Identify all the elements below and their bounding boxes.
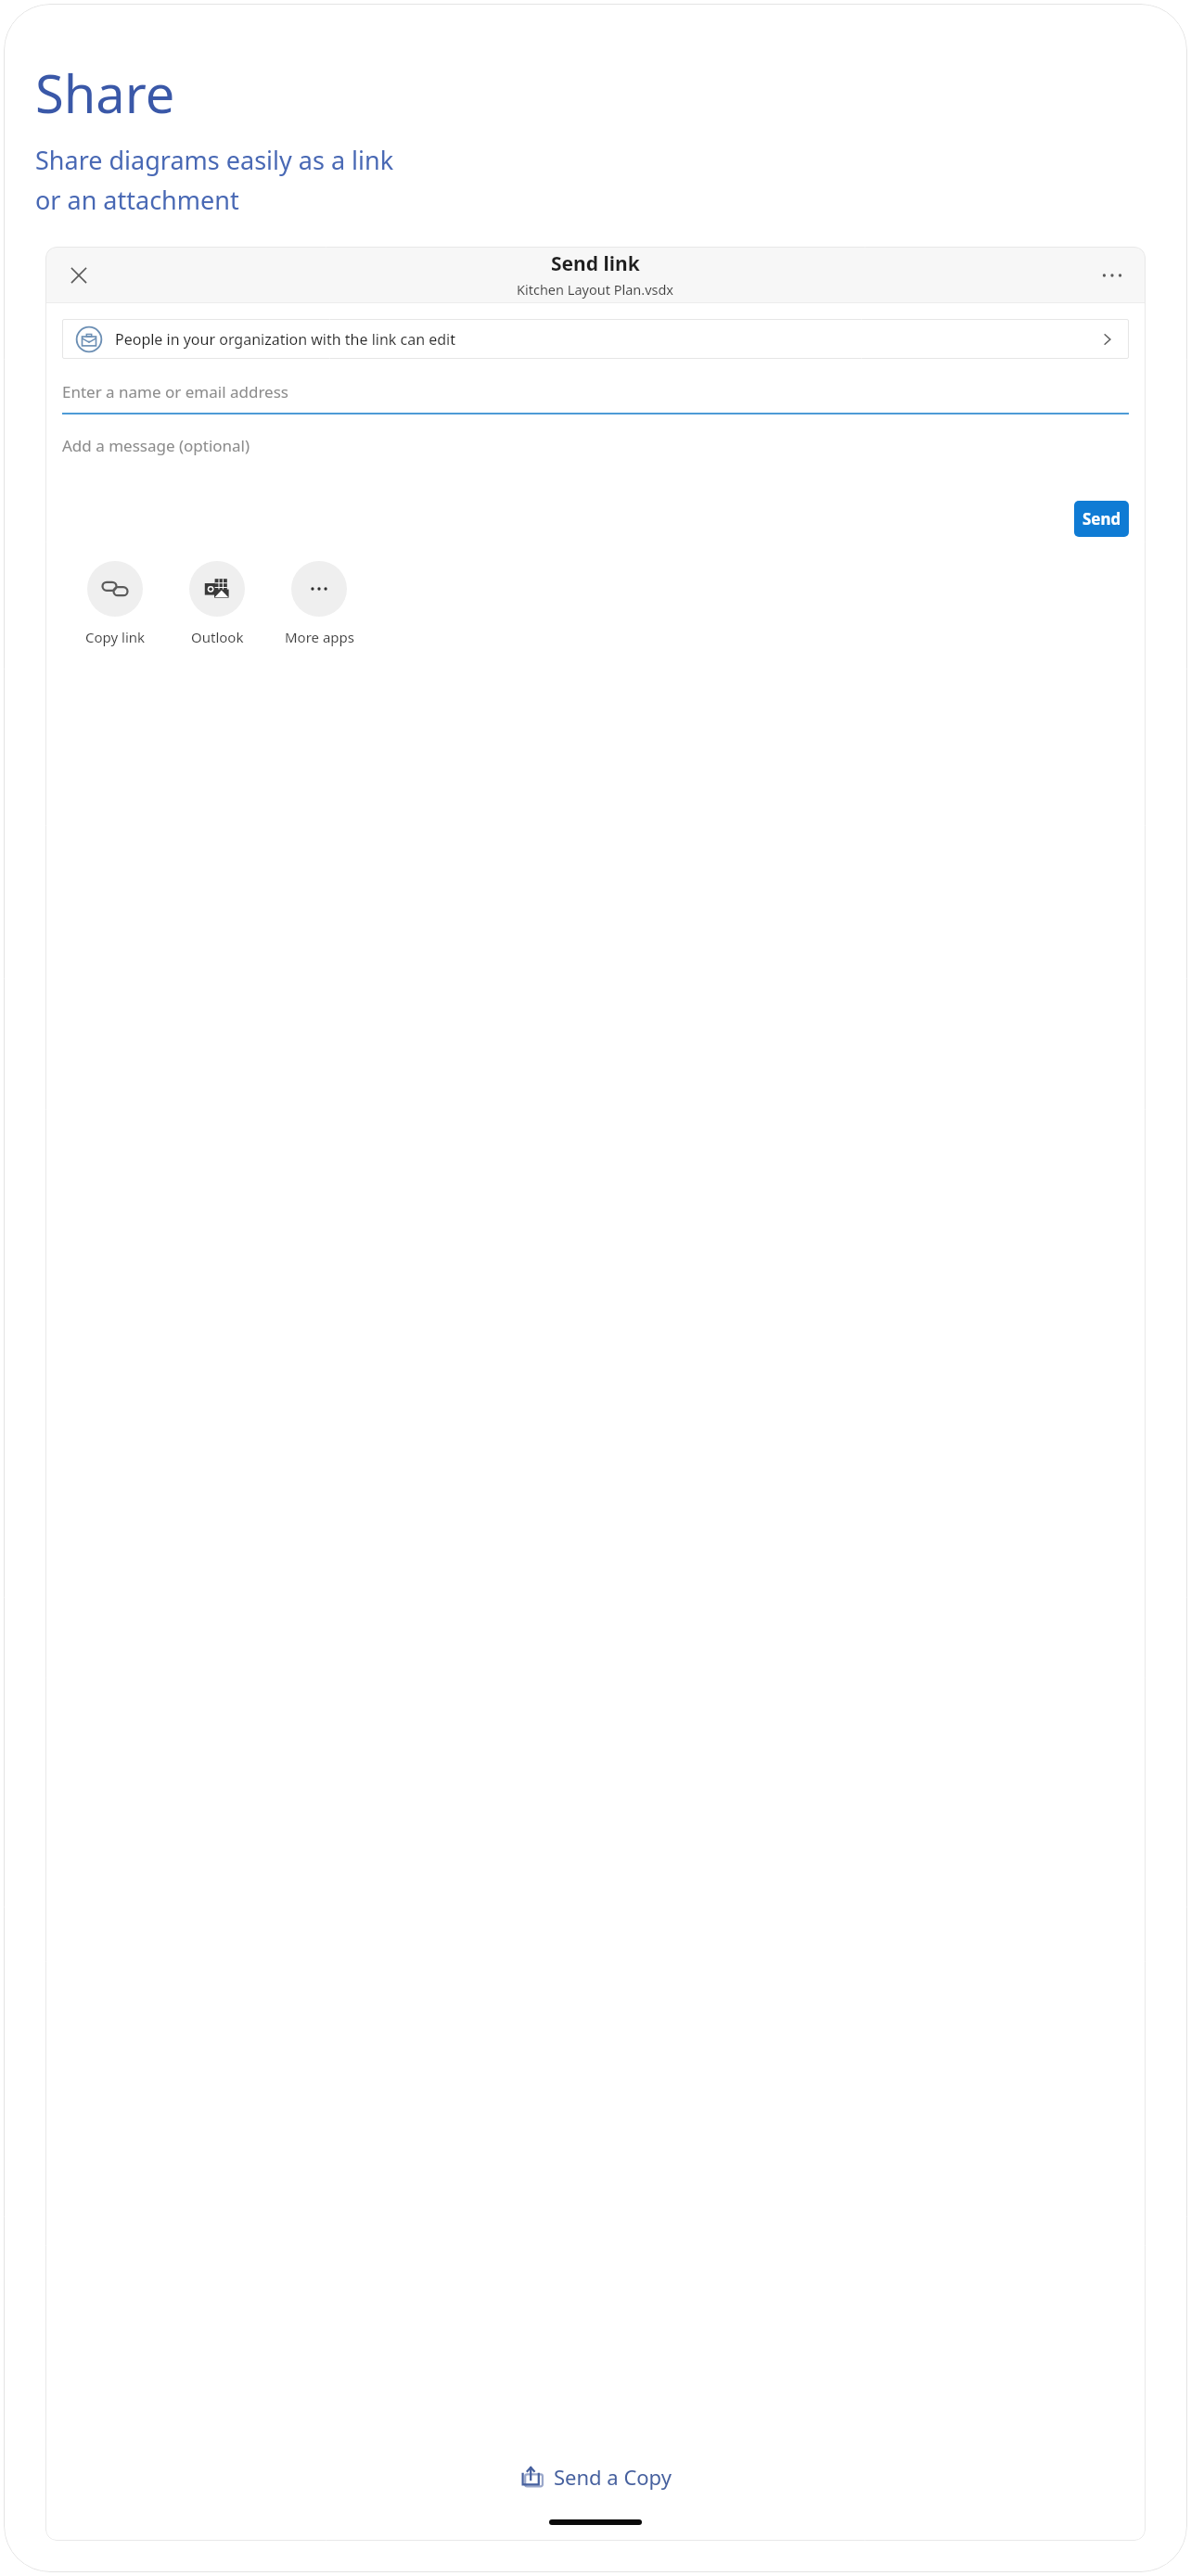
button[interactable]: Add a message (optional) [62, 435, 1129, 456]
staticText: Share [35, 57, 175, 128]
button[interactable]: Outlook [171, 559, 263, 648]
staticText: People in your organization with the lin… [115, 329, 1099, 350]
button[interactable]: Send [1074, 501, 1129, 537]
button[interactable]: More apps [273, 559, 365, 648]
staticText: Send [1082, 508, 1121, 529]
staticText: Outlook [191, 628, 244, 646]
staticText: Enter a name or email address [62, 381, 288, 402]
staticText: More apps [285, 628, 354, 646]
staticText: Send a Copy [554, 2463, 672, 2491]
staticText: Copy link [85, 628, 146, 646]
button[interactable]: People in your organization with the lin… [62, 319, 1129, 359]
staticText: Share diagrams easily as a link [35, 143, 394, 177]
button[interactable]: Copy link [69, 559, 161, 648]
button[interactable]: More options [1092, 255, 1133, 296]
button[interactable]: Send a Copy [45, 2446, 1146, 2507]
staticText: or an attachment [35, 183, 239, 217]
button[interactable]: Enter a name or email address [62, 381, 1129, 414]
staticText: Add a message (optional) [62, 435, 250, 456]
staticText: Send link [551, 250, 640, 277]
staticText: Kitchen Layout Plan.vsdx [517, 280, 674, 299]
button[interactable]: Close [58, 255, 99, 296]
